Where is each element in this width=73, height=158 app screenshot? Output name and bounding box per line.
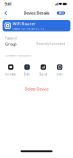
button[interactable]: Rename	[3, 64, 19, 76]
staticText: Password	[5, 37, 17, 40]
button[interactable]: Group	[3, 41, 70, 46]
staticText: WiFi Router	[12, 21, 35, 26]
staticText: Group	[5, 41, 16, 47]
staticText: Edit	[58, 11, 63, 15]
button[interactable]: Share	[19, 64, 35, 76]
button[interactable]: Back	[0, 8, 10, 18]
staticText: Delete Device	[24, 86, 48, 91]
button[interactable]: Edit	[57, 11, 65, 15]
staticText: Signal	[39, 73, 47, 76]
staticText: Rename	[5, 73, 16, 76]
staticText: Timer	[56, 73, 63, 76]
staticText: Recently Connected	[36, 42, 65, 46]
staticText: Device Details	[23, 10, 49, 16]
button[interactable]: Delete Device	[3, 87, 70, 91]
staticText: Device ID: 08:AF:2C:19	[12, 27, 44, 30]
staticText: 9:41	[4, 1, 11, 7]
staticText: Share	[24, 73, 31, 76]
button[interactable]: Signal	[35, 64, 51, 76]
button[interactable]: Timer	[51, 64, 68, 76]
staticText: Common Functions	[5, 54, 31, 57]
